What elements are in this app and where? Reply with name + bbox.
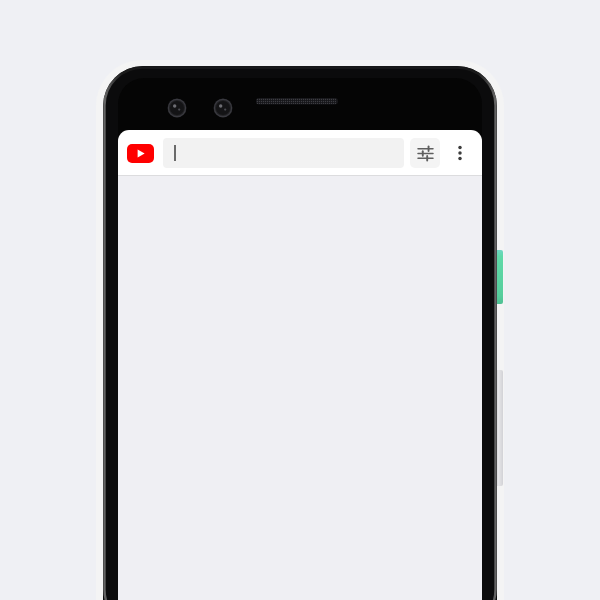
button[interactable]: Filters <box>410 138 440 168</box>
button[interactable]: Search <box>163 138 404 168</box>
button[interactable]: Power <box>495 250 503 304</box>
button[interactable]: More options <box>445 138 475 168</box>
button[interactable]: Volume <box>495 370 503 486</box>
button[interactable]: YouTube <box>127 144 154 163</box>
